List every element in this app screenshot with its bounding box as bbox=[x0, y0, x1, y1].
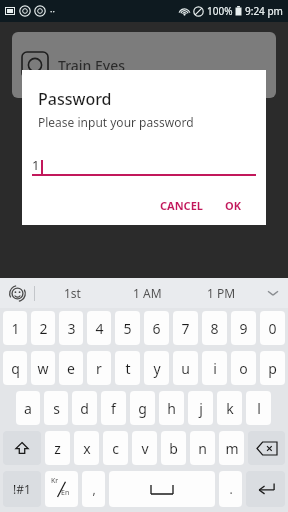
button[interactable]: t bbox=[115, 351, 140, 385]
button[interactable]: 8 bbox=[202, 311, 227, 345]
staticText: v bbox=[141, 439, 149, 458]
button[interactable]: 4 bbox=[87, 311, 111, 345]
staticText: a bbox=[24, 399, 32, 418]
staticText: b bbox=[169, 439, 178, 458]
button[interactable]: Backspace bbox=[248, 431, 285, 465]
button[interactable]: 3 bbox=[59, 311, 83, 345]
button[interactable]: . bbox=[219, 471, 242, 507]
staticText: Train Eyes bbox=[58, 56, 126, 75]
staticText: 1 PM bbox=[207, 285, 236, 301]
staticText: En bbox=[61, 488, 70, 498]
button[interactable]: x bbox=[74, 431, 99, 465]
button[interactable]: CANCEL bbox=[154, 192, 209, 219]
staticText: l bbox=[257, 399, 261, 418]
button[interactable]: d bbox=[72, 391, 97, 425]
button[interactable]: y bbox=[144, 351, 169, 385]
staticText: e bbox=[67, 359, 75, 378]
staticText: 3 bbox=[67, 319, 76, 338]
button[interactable]: , bbox=[82, 471, 105, 507]
staticText: 1 bbox=[11, 319, 20, 338]
staticText: f bbox=[111, 399, 116, 418]
button[interactable]: n bbox=[190, 431, 215, 465]
button[interactable]: u bbox=[173, 351, 198, 385]
button[interactable]: o bbox=[231, 351, 256, 385]
staticText: ·· bbox=[50, 5, 55, 17]
button[interactable]: Enable Screen bbox=[12, 294, 276, 360]
staticText: 100% bbox=[207, 4, 233, 18]
button[interactable]: Emoji bbox=[0, 278, 34, 308]
button[interactable]: 5 bbox=[115, 311, 140, 345]
button[interactable]: 1 bbox=[32, 150, 256, 176]
staticText: . bbox=[229, 481, 233, 497]
button[interactable]: !#1 bbox=[3, 471, 41, 507]
staticText: c bbox=[112, 439, 119, 458]
button[interactable]: c bbox=[103, 431, 128, 465]
button[interactable]: 9 bbox=[231, 311, 256, 345]
staticText: s bbox=[53, 399, 60, 418]
staticText: OK bbox=[225, 198, 242, 213]
button[interactable]: s bbox=[44, 391, 68, 425]
button[interactable]: r bbox=[87, 351, 111, 385]
button[interactable]: b bbox=[161, 431, 186, 465]
staticText: 4 bbox=[95, 319, 104, 338]
staticText: j bbox=[199, 399, 203, 418]
button[interactable]: 2 bbox=[31, 311, 55, 345]
staticText: 8 bbox=[210, 319, 219, 338]
button[interactable]: 1 PM bbox=[184, 278, 258, 308]
staticText: i bbox=[213, 359, 217, 378]
button[interactable]: OK bbox=[219, 192, 248, 219]
button[interactable]: f bbox=[101, 391, 126, 425]
staticText: Enable Screen bbox=[58, 318, 152, 337]
staticText: CANCEL bbox=[160, 198, 203, 213]
button[interactable]: g bbox=[130, 391, 155, 425]
staticText: 9:24 pm bbox=[245, 4, 283, 18]
staticText: k bbox=[226, 399, 234, 418]
staticText: Kr bbox=[51, 476, 59, 486]
staticText: 1 bbox=[32, 156, 40, 174]
staticText: t bbox=[125, 359, 131, 378]
staticText: 5 bbox=[123, 319, 132, 338]
button[interactable]: 6 bbox=[144, 311, 169, 345]
staticText: y bbox=[153, 359, 161, 378]
button[interactable]: 0 bbox=[260, 311, 285, 345]
staticText: , bbox=[92, 481, 96, 497]
button[interactable] bbox=[109, 471, 215, 507]
staticText: w bbox=[37, 359, 49, 378]
button[interactable]: 1st bbox=[35, 278, 110, 308]
button[interactable]: w bbox=[31, 351, 55, 385]
staticText: Please input your password bbox=[38, 114, 194, 130]
button[interactable]: 7 bbox=[173, 311, 198, 345]
button[interactable]: m bbox=[219, 431, 244, 465]
staticText: g bbox=[138, 399, 147, 418]
button[interactable]: z bbox=[45, 431, 70, 465]
button[interactable]: a bbox=[16, 391, 40, 425]
staticText: 9 bbox=[239, 319, 248, 338]
button[interactable]: h bbox=[159, 391, 184, 425]
staticText: 0 bbox=[268, 319, 277, 338]
button[interactable]: j bbox=[188, 391, 213, 425]
button[interactable]: v bbox=[132, 431, 157, 465]
button[interactable]: 1 AM bbox=[110, 278, 184, 308]
button[interactable]: k bbox=[217, 391, 242, 425]
button[interactable]: p bbox=[260, 351, 285, 385]
staticText: Password bbox=[38, 88, 112, 110]
button[interactable]: q bbox=[3, 351, 27, 385]
staticText: 7 bbox=[181, 319, 190, 338]
button[interactable]: i bbox=[202, 351, 227, 385]
staticText: q bbox=[11, 359, 20, 378]
staticText: u bbox=[181, 359, 190, 378]
staticText: 1 AM bbox=[133, 285, 162, 301]
button[interactable]: Shift bbox=[3, 431, 41, 465]
staticText: r bbox=[96, 359, 102, 378]
button[interactable]: Train Eyes bbox=[12, 32, 276, 98]
button[interactable]: 1 bbox=[3, 311, 27, 345]
button[interactable]: e bbox=[59, 351, 83, 385]
staticText: o bbox=[239, 359, 248, 378]
button[interactable]: Language bbox=[45, 471, 78, 507]
staticText: 2 bbox=[39, 319, 48, 338]
button[interactable]: Enter bbox=[246, 471, 285, 507]
staticText: !#1 bbox=[13, 481, 31, 497]
staticText: h bbox=[167, 399, 176, 418]
button[interactable]: l bbox=[246, 391, 271, 425]
button[interactable]: Expand suggestions bbox=[258, 278, 288, 308]
